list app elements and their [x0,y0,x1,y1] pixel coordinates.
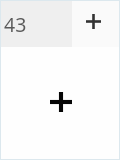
button[interactable]: 43 [1,1,72,47]
staticText: 43 [4,11,27,38]
button[interactable]: Add [72,1,119,47]
button[interactable]: Add [50,92,72,112]
